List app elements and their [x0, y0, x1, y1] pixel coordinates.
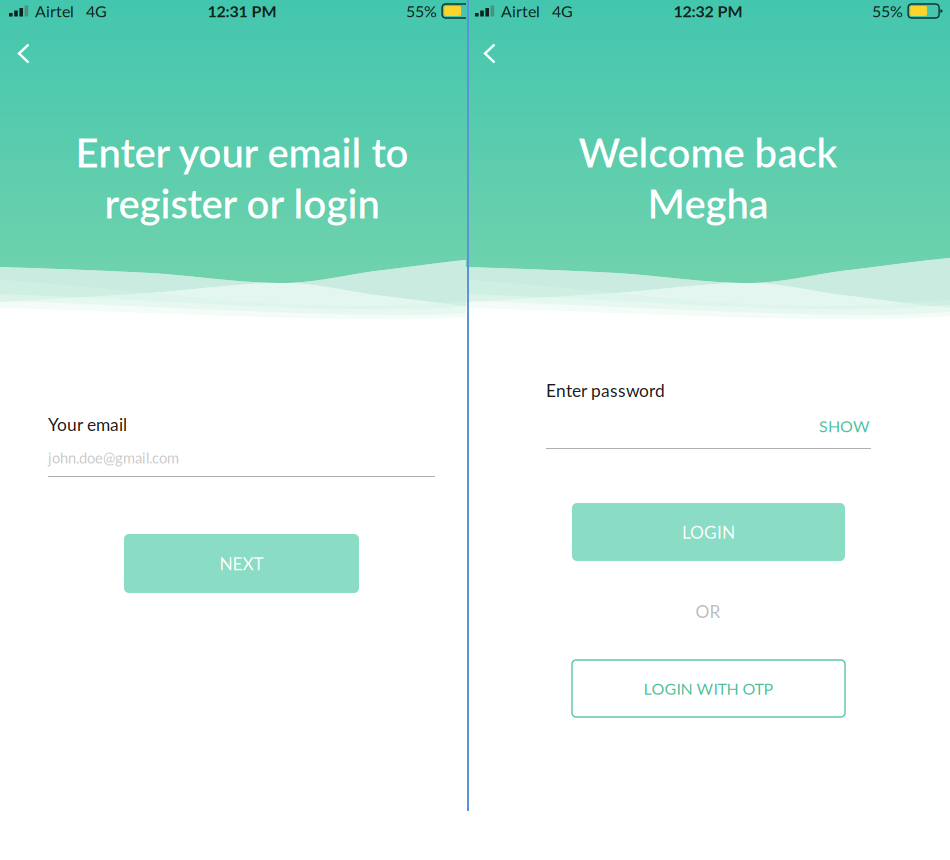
button[interactable]: NEXT: [124, 534, 359, 593]
staticText: Airtel: [35, 1, 74, 21]
staticText: Airtel: [501, 1, 540, 21]
staticText: Megha: [647, 179, 768, 227]
staticText: 4G: [86, 1, 107, 21]
staticText: NEXT: [219, 553, 263, 574]
staticText: Welcome back: [578, 128, 837, 176]
staticText: 12:32 PM: [673, 1, 742, 21]
button[interactable]: Back: [466, 22, 515, 78]
button[interactable]: LOGIN WITH OTP: [572, 660, 845, 717]
staticText: 12:31 PM: [207, 1, 276, 21]
staticText: register or login: [104, 179, 379, 227]
staticText: LOGIN WITH OTP: [643, 679, 773, 698]
staticText: LOGIN: [682, 522, 735, 542]
button[interactable]: SHOW: [800, 415, 870, 437]
staticText: john.doe@gmail.com: [48, 449, 179, 467]
staticText: Enter your email to: [75, 128, 408, 176]
button[interactable]: Back: [0, 22, 49, 78]
staticText: SHOW: [819, 416, 870, 436]
staticText: Your email: [48, 414, 127, 435]
staticText: OR: [695, 601, 720, 622]
staticText: 55%: [872, 1, 903, 21]
button[interactable]: LOGIN: [572, 503, 845, 561]
staticText: 4G: [552, 1, 573, 21]
staticText: 55%: [406, 1, 437, 21]
staticText: Enter password: [546, 380, 665, 401]
